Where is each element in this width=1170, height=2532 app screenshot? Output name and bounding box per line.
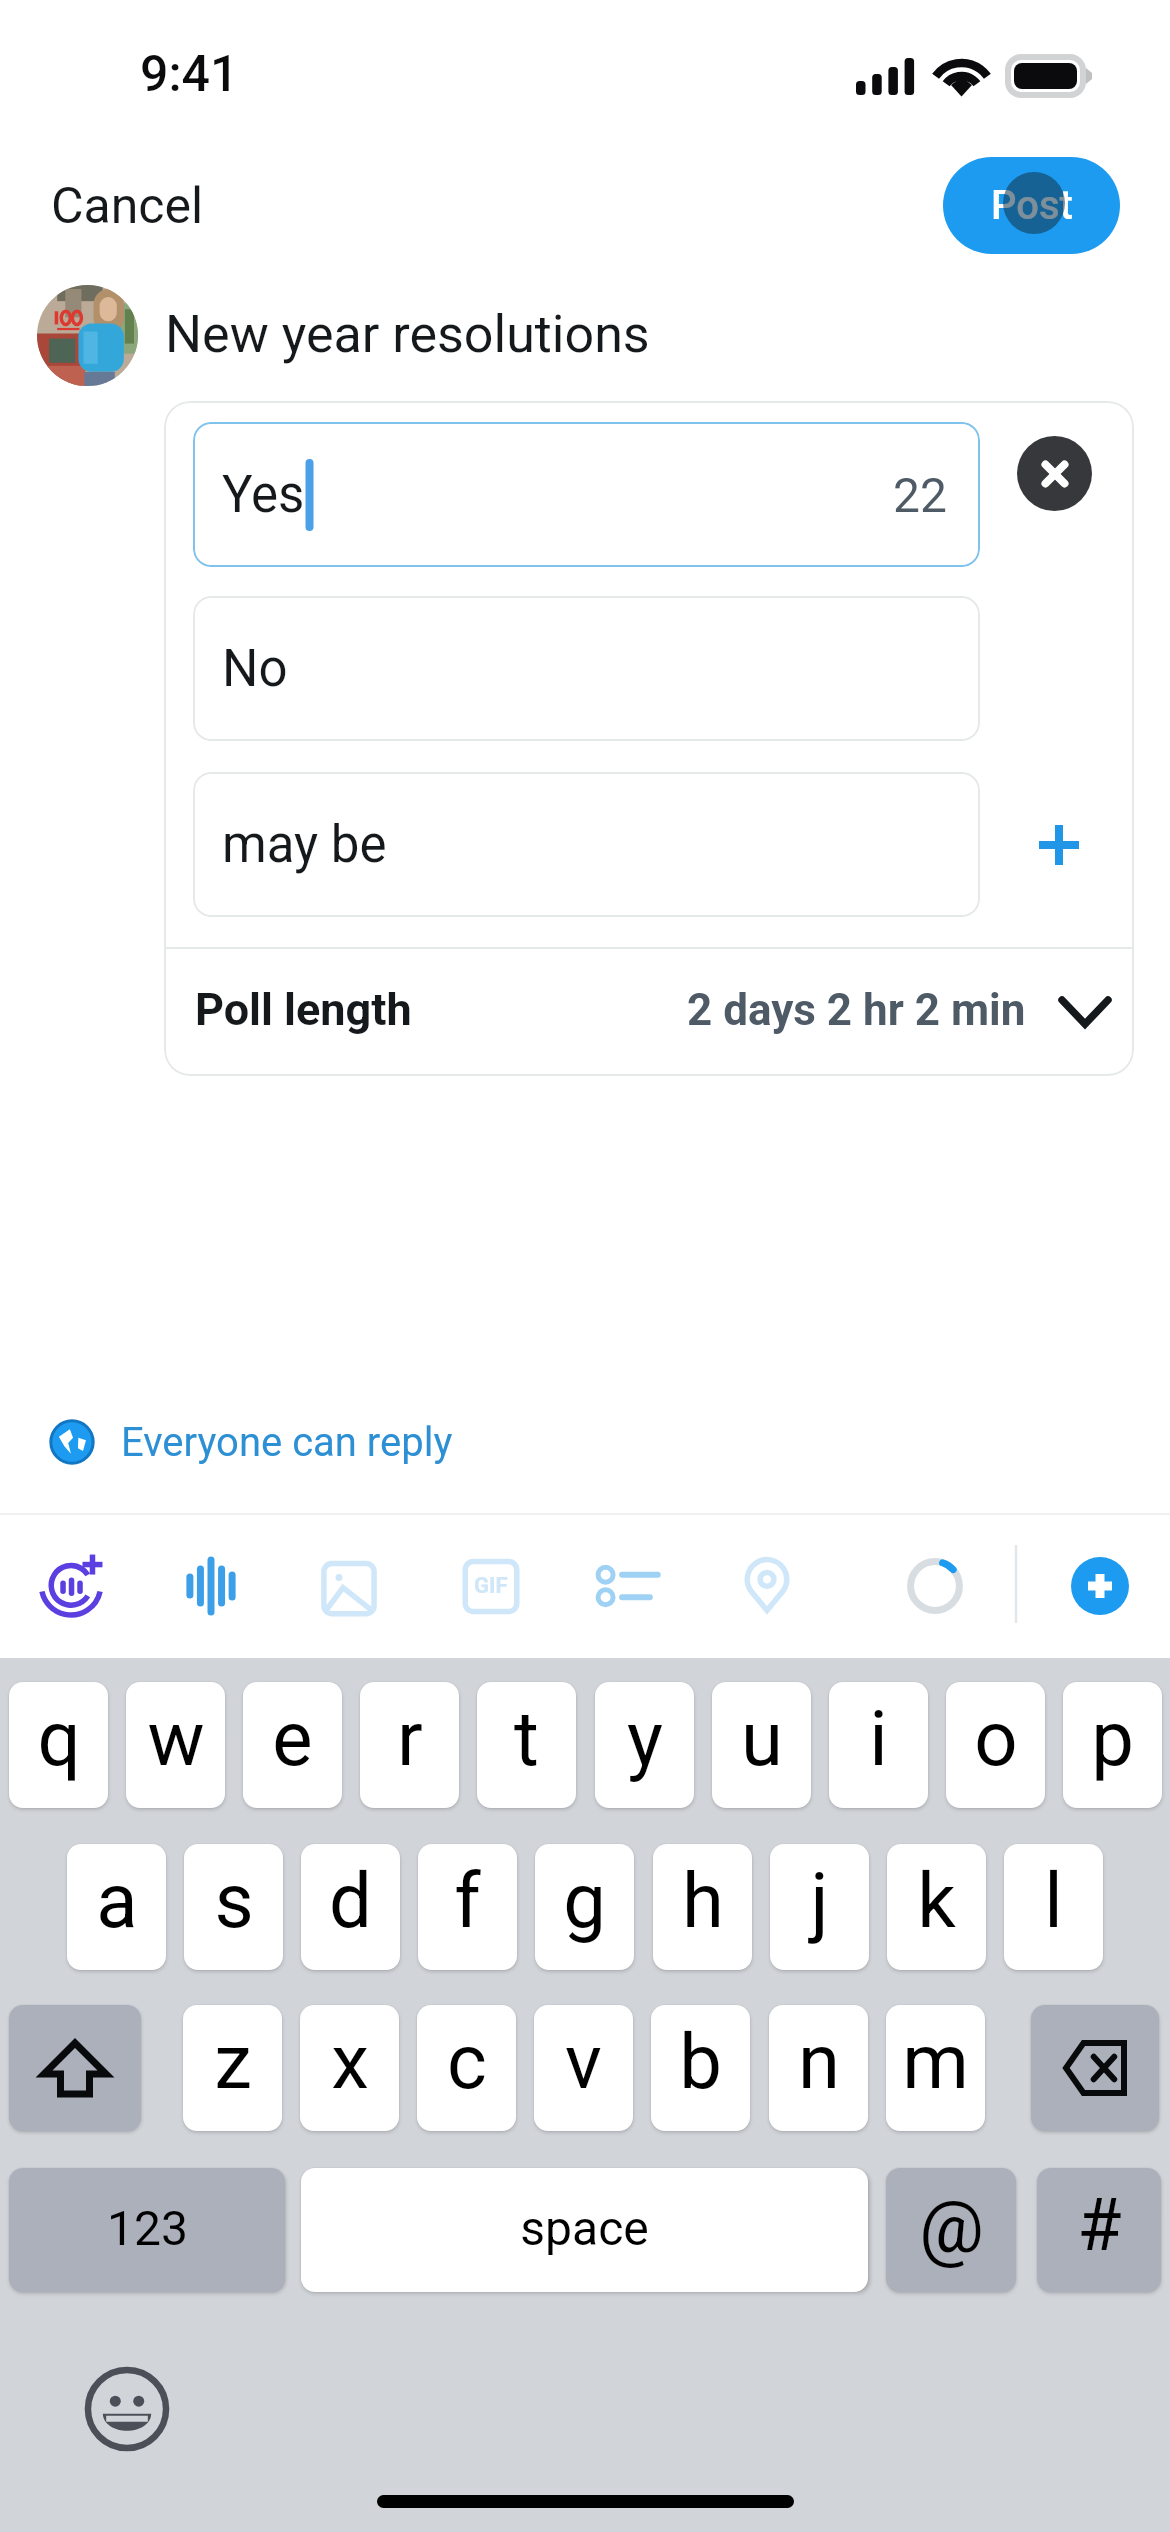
button[interactable]: Cancel (51, 177, 204, 236)
staticText: h (682, 1856, 724, 1945)
button[interactable]: a (67, 1844, 166, 1970)
staticText: l (1044, 1856, 1063, 1945)
staticText: i (869, 1694, 888, 1783)
button[interactable]: space (301, 2168, 868, 2292)
button[interactable]: p (1063, 1682, 1162, 1808)
staticText: space (520, 2200, 649, 2256)
button[interactable]: k (887, 1844, 986, 1970)
staticText: f (454, 1856, 481, 1945)
button[interactable]: h (653, 1844, 752, 1970)
button[interactable]: may be (193, 772, 980, 917)
button[interactable]: Location (707, 1526, 827, 1646)
staticText: Poll length (195, 983, 412, 1036)
button[interactable]: 123 (9, 2168, 285, 2292)
staticText: 9:41 (140, 45, 239, 104)
staticText: w (147, 1694, 205, 1783)
button[interactable]: m (886, 2005, 985, 2131)
button[interactable]: q (9, 1682, 108, 1808)
staticText: x (331, 2017, 369, 2106)
staticText: r (397, 1694, 423, 1783)
button[interactable]: g (535, 1844, 634, 1970)
staticText: d (329, 1856, 372, 1945)
button[interactable]: w (126, 1682, 225, 1808)
staticText: u (741, 1694, 783, 1783)
staticText: GIF (474, 1573, 508, 1599)
staticText: q (37, 1694, 81, 1783)
button[interactable]: Media (289, 1526, 409, 1646)
button[interactable]: @ (886, 2168, 1016, 2292)
staticText: v (565, 2017, 602, 2106)
button[interactable]: Yes (193, 422, 980, 567)
staticText: g (563, 1856, 606, 1945)
button[interactable]: t (477, 1682, 576, 1808)
staticText: e (272, 1694, 313, 1783)
staticText: @ (919, 2185, 984, 2269)
staticText: o (974, 1694, 1018, 1783)
staticText: 2 days 2 hr 2 min (687, 984, 1026, 1036)
button[interactable]: Remove option (1017, 436, 1092, 511)
staticText: n (798, 2017, 840, 2106)
staticText: a (96, 1856, 138, 1945)
button[interactable]: i (829, 1682, 928, 1808)
staticText: m (902, 2017, 969, 2106)
button[interactable]: Add post (1071, 1557, 1129, 1615)
staticText: 22 (893, 467, 947, 523)
staticText: b (679, 2017, 722, 2106)
button[interactable]: Voice (151, 1526, 271, 1646)
button[interactable]: Shift (9, 2005, 141, 2131)
button[interactable]: d (301, 1844, 400, 1970)
staticText: Post (991, 182, 1073, 229)
button[interactable]: r (360, 1682, 459, 1808)
staticText: y (627, 1694, 663, 1783)
button[interactable]: v (534, 2005, 633, 2131)
button[interactable]: No (193, 596, 980, 741)
button[interactable]: n (769, 2005, 868, 2131)
staticText: # (1077, 2183, 1122, 2267)
staticText: p (1091, 1694, 1134, 1783)
staticText: z (214, 2017, 252, 2106)
button[interactable]: s (184, 1844, 283, 1970)
button[interactable]: l (1004, 1844, 1103, 1970)
staticText: k (917, 1856, 956, 1945)
button[interactable]: GIF (431, 1526, 551, 1646)
staticText: c (447, 2017, 487, 2106)
staticText: 123 (107, 2200, 188, 2256)
button[interactable]: # (1037, 2168, 1161, 2292)
button[interactable]: Character count (875, 1526, 995, 1646)
staticText: j (810, 1856, 829, 1945)
button[interactable]: x (300, 2005, 399, 2131)
button[interactable]: Add option (1006, 792, 1111, 897)
staticText: s (214, 1856, 254, 1945)
staticText: Yes (222, 465, 305, 525)
button[interactable]: b (651, 2005, 750, 2131)
staticText: No (222, 639, 288, 699)
button[interactable]: e (243, 1682, 342, 1808)
staticText: New year resolutions (165, 304, 650, 365)
button[interactable]: z (183, 2005, 282, 2131)
staticText: may be (222, 815, 387, 875)
button[interactable]: c (417, 2005, 516, 2131)
button[interactable]: f (418, 1844, 517, 1970)
button[interactable]: Poll (570, 1526, 690, 1646)
staticText: Cancel (51, 177, 204, 236)
button[interactable]: Backspace (1031, 2005, 1159, 2131)
button[interactable]: Poll length (164, 949, 1134, 1070)
button[interactable]: Everyone can reply (49, 1410, 453, 1474)
button[interactable]: Emoji sticker (14, 1526, 134, 1646)
staticText: Everyone can reply (121, 1419, 453, 1466)
staticText: t (514, 1694, 539, 1783)
button[interactable]: j (770, 1844, 869, 1970)
button[interactable]: y (595, 1682, 694, 1808)
button[interactable]: Emoji (85, 2367, 169, 2451)
button[interactable]: o (946, 1682, 1045, 1808)
button[interactable]: u (712, 1682, 811, 1808)
button[interactable]: Post (943, 157, 1120, 254)
